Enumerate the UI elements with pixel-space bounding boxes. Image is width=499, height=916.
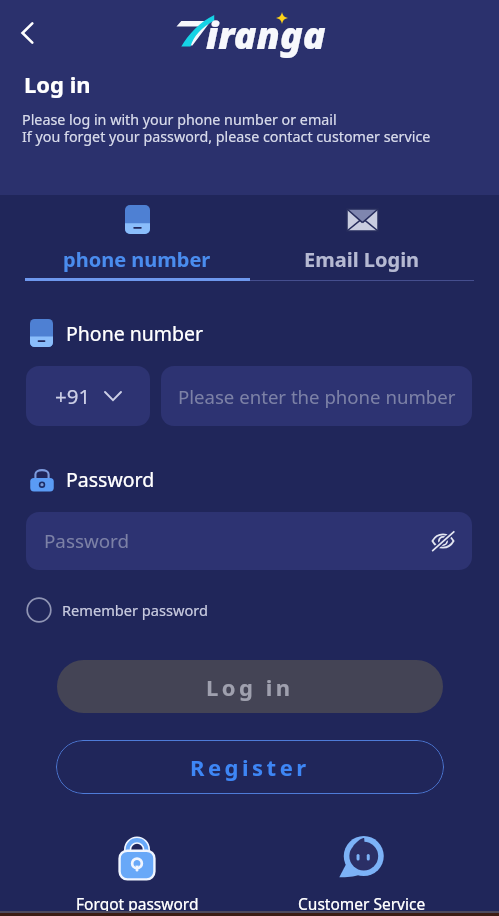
- button[interactable]: Show password: [426, 524, 460, 558]
- staticText: Log in: [24, 69, 91, 99]
- staticText: +91: [55, 382, 91, 410]
- button[interactable]: Remember password: [26, 597, 209, 623]
- button[interactable]: Forgot password: [25, 834, 249, 914]
- button[interactable]: Register: [56, 740, 444, 794]
- staticText: Remember password: [62, 600, 209, 620]
- staticText: phone number: [63, 246, 211, 273]
- button[interactable]: Customer Service: [249, 834, 474, 914]
- staticText: Log in: [206, 672, 294, 702]
- staticText: Password: [44, 528, 130, 554]
- staticText: iranga: [206, 9, 326, 60]
- staticText: Register: [190, 752, 310, 782]
- button[interactable]: Email Login: [249, 195, 474, 273]
- button[interactable]: Password: [26, 512, 472, 570]
- staticText: If you forget your password, please cont…: [22, 127, 431, 146]
- button[interactable]: +91: [26, 366, 150, 426]
- button[interactable]: phone number: [25, 195, 249, 273]
- button[interactable]: Back: [6, 12, 48, 54]
- staticText: Forgot password: [76, 893, 199, 914]
- staticText: Phone number: [66, 320, 204, 347]
- button[interactable]: Log in: [57, 660, 443, 713]
- staticText: Password: [66, 466, 155, 493]
- staticText: Email Login: [304, 246, 420, 273]
- staticText: Please enter the phone number: [178, 384, 456, 409]
- button[interactable]: Please enter the phone number: [161, 366, 472, 426]
- staticText: Customer Service: [298, 893, 426, 914]
- staticText: Please log in with your phone number or …: [22, 110, 337, 129]
